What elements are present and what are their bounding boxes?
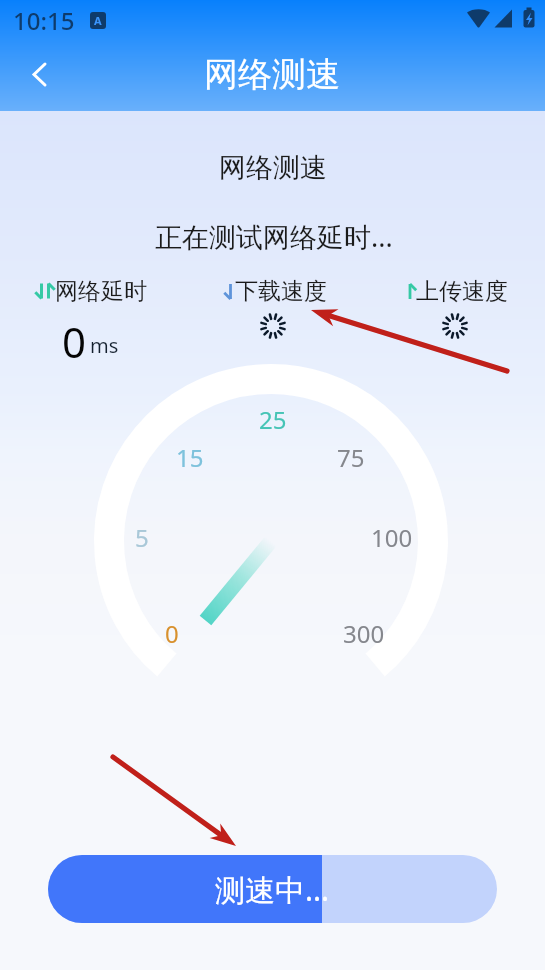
staticText: 0 — [165, 617, 179, 650]
staticText: 25 — [259, 403, 287, 436]
staticText: 网络测速 — [204, 53, 340, 96]
staticText: 10:15 — [13, 4, 75, 37]
staticText: 75 — [337, 441, 365, 474]
staticText: 5 — [135, 521, 149, 554]
staticText: 15 — [176, 441, 204, 474]
staticText: 100 — [371, 521, 413, 554]
staticText: 网络测速 — [219, 151, 327, 185]
staticText: A — [94, 13, 102, 28]
staticText: 网络延时 — [55, 277, 147, 306]
staticText: ms — [90, 332, 119, 359]
staticText: 正在测试网络延时... — [155, 218, 393, 255]
button[interactable]: 测速中... — [48, 855, 497, 923]
staticText: 300 — [343, 617, 385, 650]
staticText: 上传速度 — [416, 277, 508, 306]
button[interactable]: Back — [22, 54, 64, 96]
staticText: 下载速度 — [235, 277, 327, 306]
staticText: 测速中... — [215, 869, 330, 910]
staticText: 0 — [62, 313, 87, 370]
